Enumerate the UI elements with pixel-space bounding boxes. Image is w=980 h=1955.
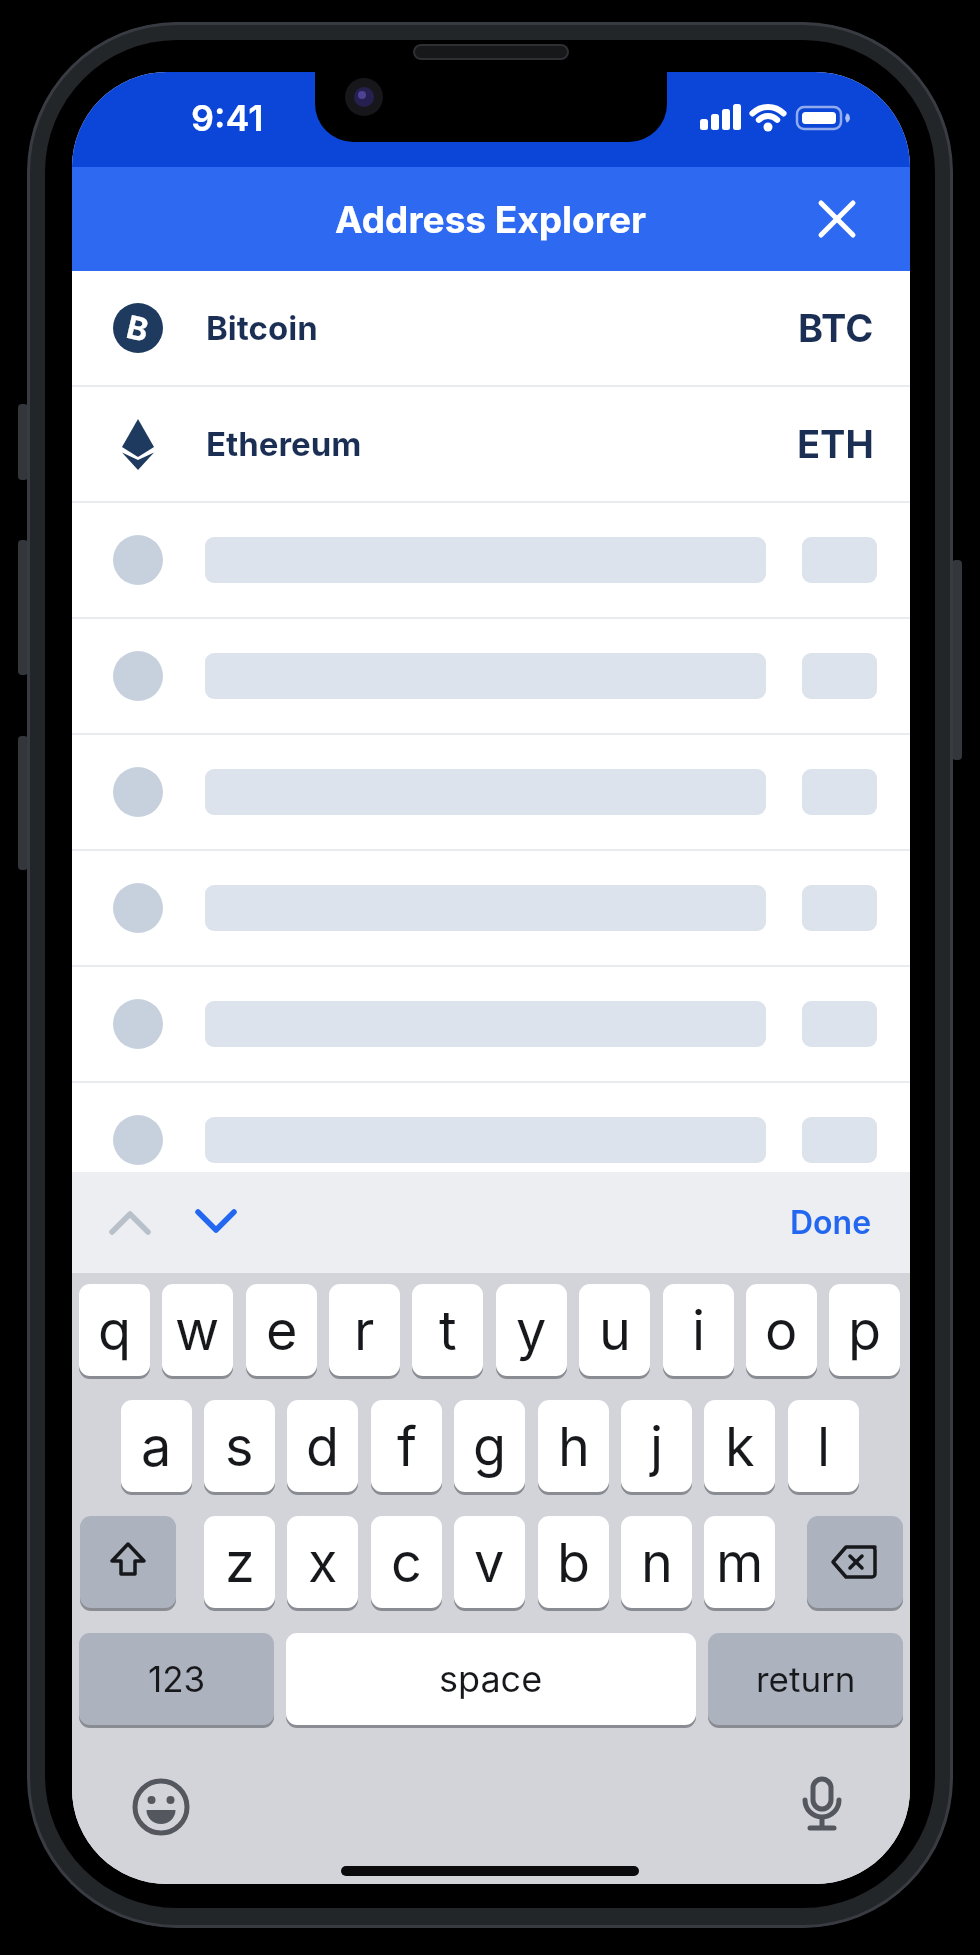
button[interactable]: c — [371, 1516, 442, 1608]
button[interactable]: n — [621, 1516, 692, 1608]
button[interactable]: f — [371, 1400, 442, 1492]
button[interactable]: w — [162, 1284, 233, 1376]
button[interactable]: space — [286, 1633, 696, 1725]
button[interactable]: x — [287, 1516, 358, 1608]
staticText: l — [817, 1414, 831, 1479]
button[interactable]: k — [704, 1400, 775, 1492]
button[interactable]: Done — [790, 1203, 872, 1242]
staticText: c — [391, 1530, 422, 1595]
button[interactable]: z — [204, 1516, 275, 1608]
button[interactable]: g — [454, 1400, 525, 1492]
button[interactable]: e — [246, 1284, 317, 1376]
button[interactable]: o — [746, 1284, 817, 1376]
staticText: i — [692, 1298, 706, 1363]
button[interactable]: B — [72, 271, 910, 387]
button[interactable]: y — [496, 1284, 567, 1376]
staticText: m — [716, 1530, 764, 1595]
staticText: Bitcoin — [206, 308, 318, 348]
staticText: ETH — [797, 421, 874, 467]
button[interactable]: Ethereum — [72, 387, 910, 503]
button[interactable]: r — [329, 1284, 400, 1376]
staticText: p — [848, 1298, 882, 1363]
button[interactable]: i — [663, 1284, 734, 1376]
staticText: d — [306, 1414, 340, 1479]
staticText: w — [175, 1298, 220, 1363]
button[interactable]: l — [788, 1400, 859, 1492]
staticText: g — [473, 1414, 507, 1479]
button[interactable]: b — [538, 1516, 609, 1608]
button[interactable] — [108, 1200, 152, 1244]
staticText: o — [765, 1298, 798, 1363]
staticText: return — [756, 1658, 856, 1700]
button[interactable]: d — [287, 1400, 358, 1492]
staticText: b — [557, 1530, 591, 1595]
button[interactable]: u — [579, 1284, 650, 1376]
button[interactable]: j — [621, 1400, 692, 1492]
staticText: BTC — [798, 305, 874, 351]
staticText: v — [474, 1530, 505, 1595]
button[interactable]: 123 — [79, 1633, 274, 1725]
staticText: B — [123, 307, 153, 350]
button[interactable]: p — [829, 1284, 900, 1376]
staticText: j — [650, 1414, 664, 1479]
staticText: x — [308, 1530, 338, 1595]
staticText: Address Explorer — [335, 197, 647, 242]
staticText: e — [266, 1298, 298, 1363]
button[interactable]: q — [79, 1284, 150, 1376]
staticText: q — [98, 1298, 132, 1363]
staticText: f — [397, 1414, 417, 1479]
button[interactable]: h — [538, 1400, 609, 1492]
staticText: 9:41 — [191, 96, 264, 140]
staticText: k — [725, 1414, 755, 1479]
button[interactable]: m — [704, 1516, 775, 1608]
staticText: Done — [790, 1203, 872, 1242]
staticText: h — [558, 1414, 590, 1479]
staticText: y — [516, 1298, 547, 1363]
button[interactable] — [816, 198, 858, 240]
staticText: n — [641, 1530, 673, 1595]
button[interactable]: v — [454, 1516, 525, 1608]
button[interactable] — [194, 1200, 238, 1244]
staticText: z — [225, 1530, 255, 1595]
staticText: u — [599, 1298, 631, 1363]
button[interactable]: s — [204, 1400, 275, 1492]
staticText: 123 — [148, 1658, 206, 1700]
staticText: space — [439, 1657, 543, 1701]
staticText: t — [439, 1298, 457, 1363]
button[interactable]: t — [412, 1284, 483, 1376]
button[interactable]: a — [121, 1400, 192, 1492]
button[interactable]: return — [708, 1633, 903, 1725]
button[interactable] — [807, 1516, 903, 1608]
button[interactable] — [80, 1516, 176, 1608]
staticText: s — [225, 1414, 254, 1479]
staticText: Ethereum — [206, 424, 362, 464]
staticText: r — [354, 1298, 375, 1363]
staticText: a — [141, 1414, 172, 1479]
